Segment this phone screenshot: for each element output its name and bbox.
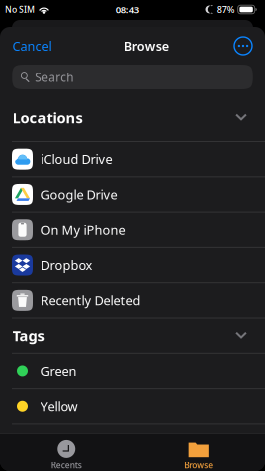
- button[interactable]: Google Drive: [0, 177, 265, 212]
- button[interactable]: iCloud Drive: [0, 142, 265, 176]
- staticText: Green: [40, 362, 76, 379]
- staticText: iCloud Drive: [40, 151, 112, 168]
- button[interactable]: Cancel: [12, 32, 59, 60]
- button[interactable]: Recents: [0, 434, 132, 471]
- staticText: Browse: [124, 38, 169, 54]
- staticText: Recents: [51, 459, 82, 471]
- staticText: Search: [35, 69, 73, 85]
- staticText: 08:43: [116, 3, 139, 16]
- staticText: 87%: [217, 3, 235, 15]
- button[interactable]: Green: [0, 354, 265, 388]
- staticText: No SIM: [5, 4, 35, 15]
- button[interactable]: Browse: [132, 434, 265, 471]
- staticText: On My iPhone: [40, 221, 125, 238]
- staticText: Locations: [12, 108, 82, 127]
- button[interactable]: Collapse Locations: [228, 104, 254, 130]
- staticText: Browse: [184, 459, 213, 471]
- staticText: Cancel: [12, 38, 51, 54]
- button[interactable]: Search: [12, 65, 253, 89]
- staticText: Recently Deleted: [40, 292, 140, 309]
- staticText: Dropbox: [40, 257, 92, 274]
- button[interactable]: Recently Deleted: [0, 283, 265, 317]
- button[interactable]: More options: [233, 36, 253, 56]
- button[interactable]: On My iPhone: [0, 213, 265, 247]
- staticText: Tags: [12, 326, 44, 345]
- button[interactable]: Dropbox: [0, 248, 265, 282]
- button[interactable]: Collapse Tags: [228, 323, 254, 349]
- button[interactable]: Yellow: [0, 389, 265, 423]
- staticText: Yellow: [40, 398, 77, 415]
- staticText: Google Drive: [40, 186, 117, 203]
